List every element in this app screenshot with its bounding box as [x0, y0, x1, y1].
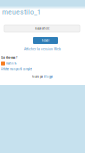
button[interactable]: Accueil — [33, 37, 58, 44]
button[interactable]: Blogger — [44, 75, 53, 78]
staticText: Afficher mon profil complet — [1, 67, 32, 71]
staticText: Aucun article — [35, 27, 49, 30]
staticText: Blogger — [44, 75, 53, 78]
staticText: Qui êtes-vous ? — [1, 56, 17, 59]
staticText: meuestilo_1 — [2, 7, 41, 16]
button[interactable]: martin 16 — [0, 61, 85, 65]
button[interactable]: Afficher mon profil complet — [0, 67, 85, 71]
button[interactable]: Afficher la version Web — [24, 47, 61, 51]
staticText: martin 16 — [6, 62, 16, 65]
staticText: Afficher la version Web — [24, 47, 61, 51]
staticText: Accueil — [41, 39, 49, 42]
staticText: Fourni par — [32, 75, 43, 78]
